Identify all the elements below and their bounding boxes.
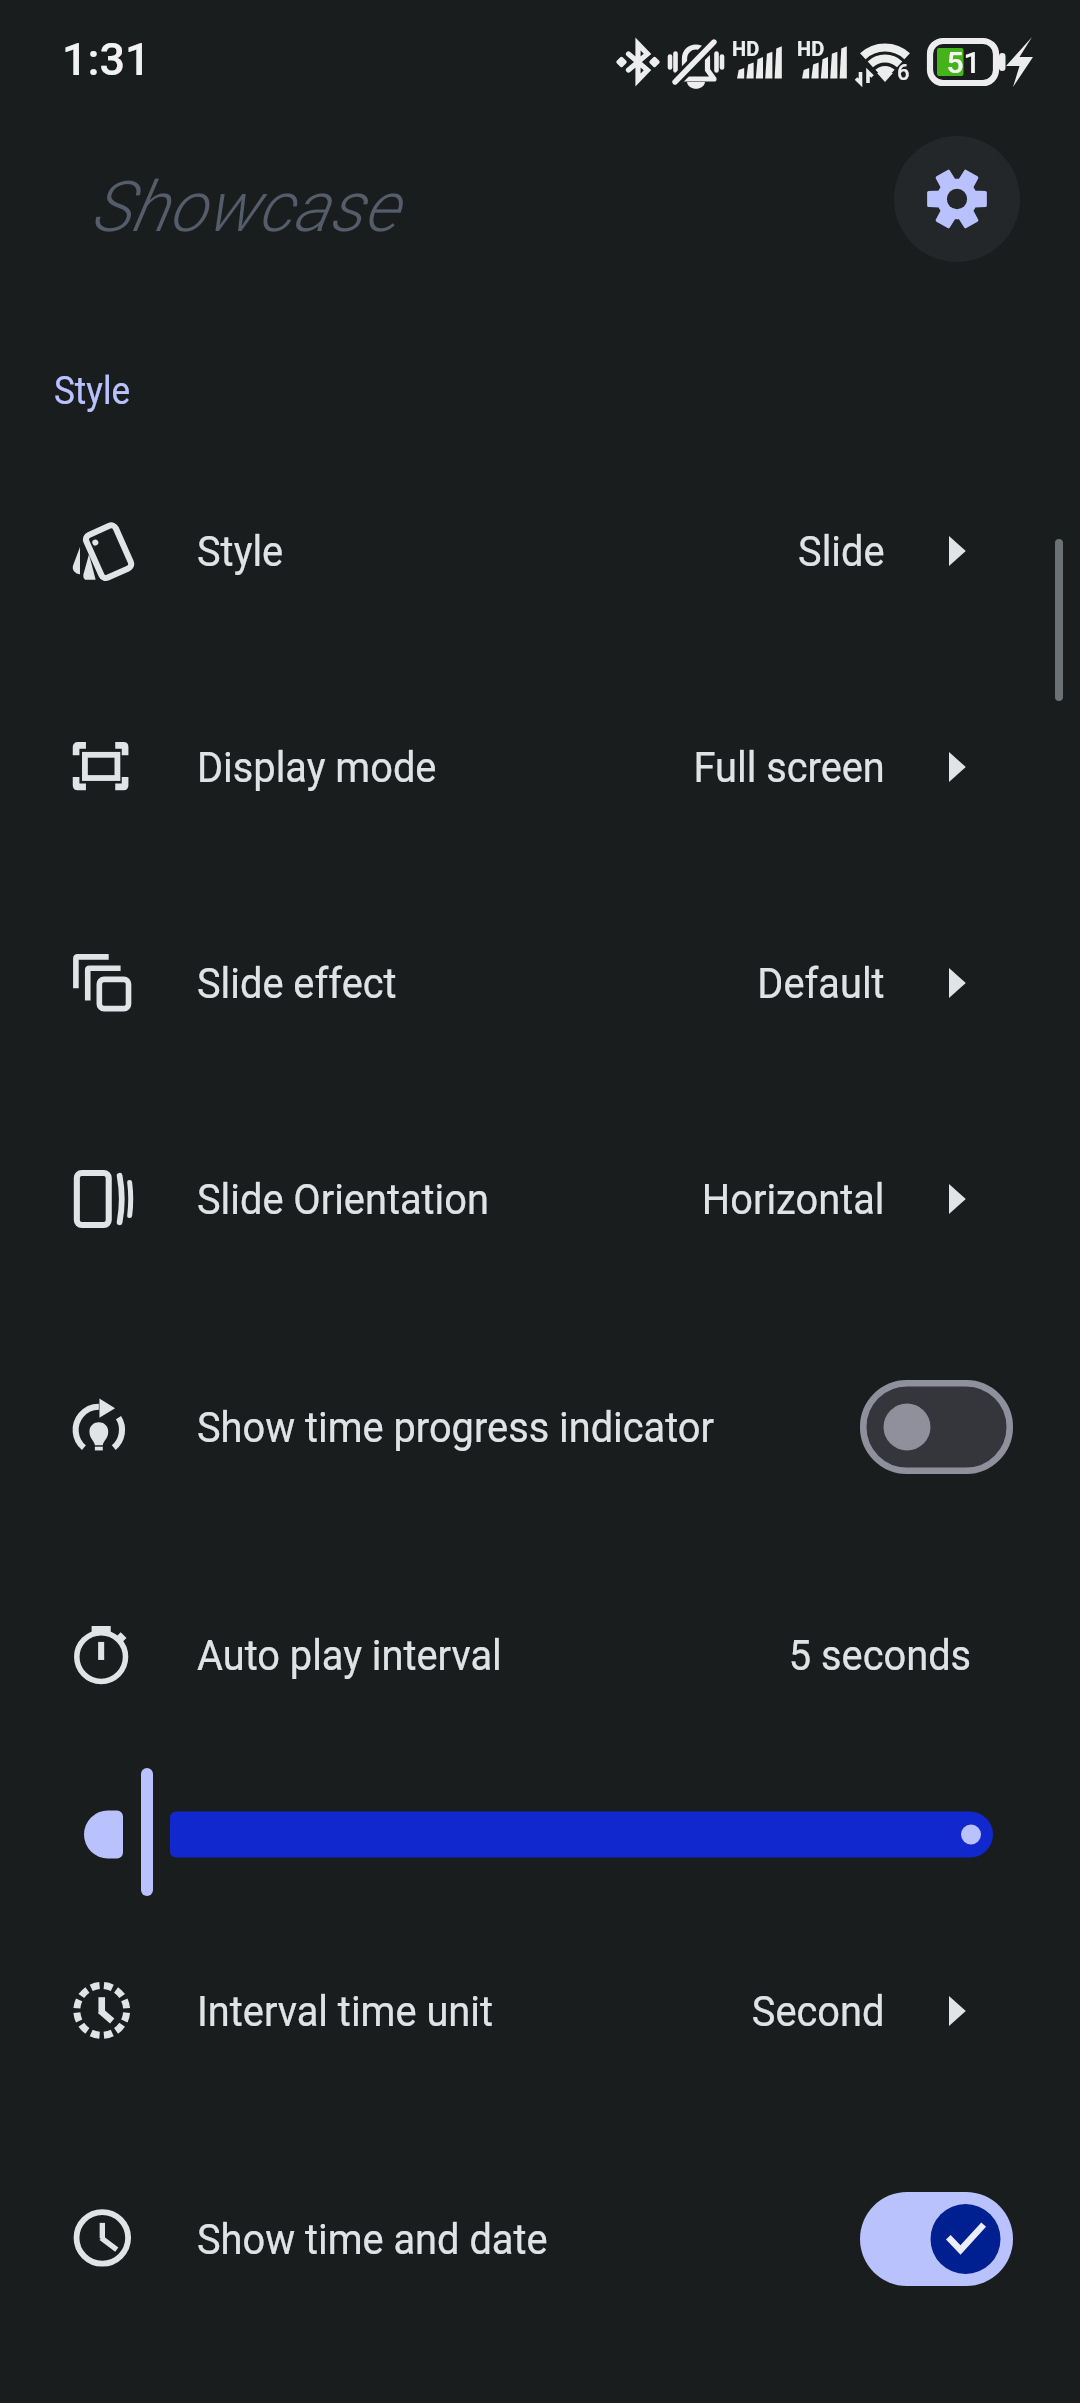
staticText: Showcase bbox=[91, 166, 399, 248]
staticText: Second bbox=[752, 1986, 885, 2036]
staticText: Full screen bbox=[693, 742, 885, 792]
staticText: Horizontal bbox=[702, 1174, 885, 1224]
staticText: Default bbox=[757, 958, 885, 1008]
staticText: Show time and date bbox=[197, 2214, 548, 2264]
button[interactable]: Show time and date bbox=[0, 2185, 1080, 2293]
staticText: HD bbox=[732, 37, 760, 60]
staticText: Slide Orientation bbox=[197, 1174, 489, 1224]
staticText: Slide bbox=[798, 526, 885, 576]
button[interactable]: Slide Orientation bbox=[0, 1145, 1080, 1253]
staticText: Auto play interval bbox=[197, 1630, 502, 1680]
staticText: Interval time unit bbox=[197, 1986, 493, 2036]
button[interactable]: Slide effect bbox=[0, 929, 1080, 1037]
staticText: 1:31 bbox=[62, 33, 151, 86]
button[interactable] bbox=[0, 1768, 1080, 1902]
button[interactable]: Display mode bbox=[0, 713, 1080, 821]
button[interactable]: Interval time unit bbox=[0, 1957, 1080, 2065]
staticText: 6 bbox=[897, 60, 910, 86]
staticText: Show time progress indicator bbox=[197, 1402, 714, 1452]
staticText: 5 seconds bbox=[789, 1630, 972, 1680]
staticText: 51 bbox=[946, 45, 981, 80]
staticText: Style bbox=[197, 526, 284, 576]
button[interactable]: Style bbox=[0, 497, 1080, 605]
button[interactable]: Switch off bbox=[860, 1380, 1013, 1474]
button[interactable]: Show time progress indicator bbox=[0, 1373, 1080, 1481]
staticText: Slide effect bbox=[197, 958, 397, 1008]
staticText: HD bbox=[797, 37, 825, 60]
button[interactable]: Auto play interval bbox=[0, 1601, 1080, 1709]
staticText: Style bbox=[54, 369, 131, 414]
button[interactable]: Switch on bbox=[860, 2192, 1013, 2286]
staticText: Display mode bbox=[197, 742, 437, 792]
button[interactable]: Settings bbox=[894, 136, 1020, 262]
